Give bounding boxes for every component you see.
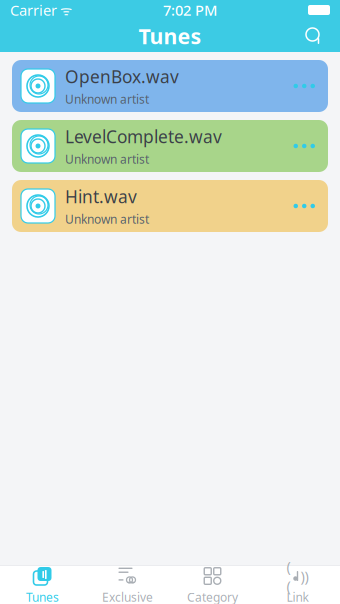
staticText: (( [286,557,290,596]
staticText: Unknown artist [65,91,149,107]
button[interactable]: OpenBox.wav [12,60,328,112]
staticText: Carrier [10,0,57,20]
staticText: Unknown artist [65,211,149,227]
staticText: )) [300,566,308,586]
staticText: OpenBox.wav [65,65,179,88]
staticText: Category [187,589,238,604]
staticText: Exclusive [102,589,153,604]
staticText: 7:02 PM [163,0,217,20]
staticText: Link [286,589,308,604]
staticText: ᯤ [57,1,72,19]
button[interactable]: (( [255,561,340,604]
staticText: LevelComplete.wav [65,125,222,148]
button[interactable]: Category [170,561,255,604]
button[interactable]: Hint.wav [12,180,328,232]
staticText: Tunes [26,589,59,604]
staticText: Unknown artist [65,151,149,167]
staticText: Tunes [138,22,201,50]
button[interactable]: Search [302,24,326,48]
button[interactable]: Exclusive [85,561,170,604]
button[interactable]: Tunes [0,561,85,604]
staticText: Hint.wav [65,185,137,208]
button[interactable]: LevelComplete.wav [12,120,328,172]
